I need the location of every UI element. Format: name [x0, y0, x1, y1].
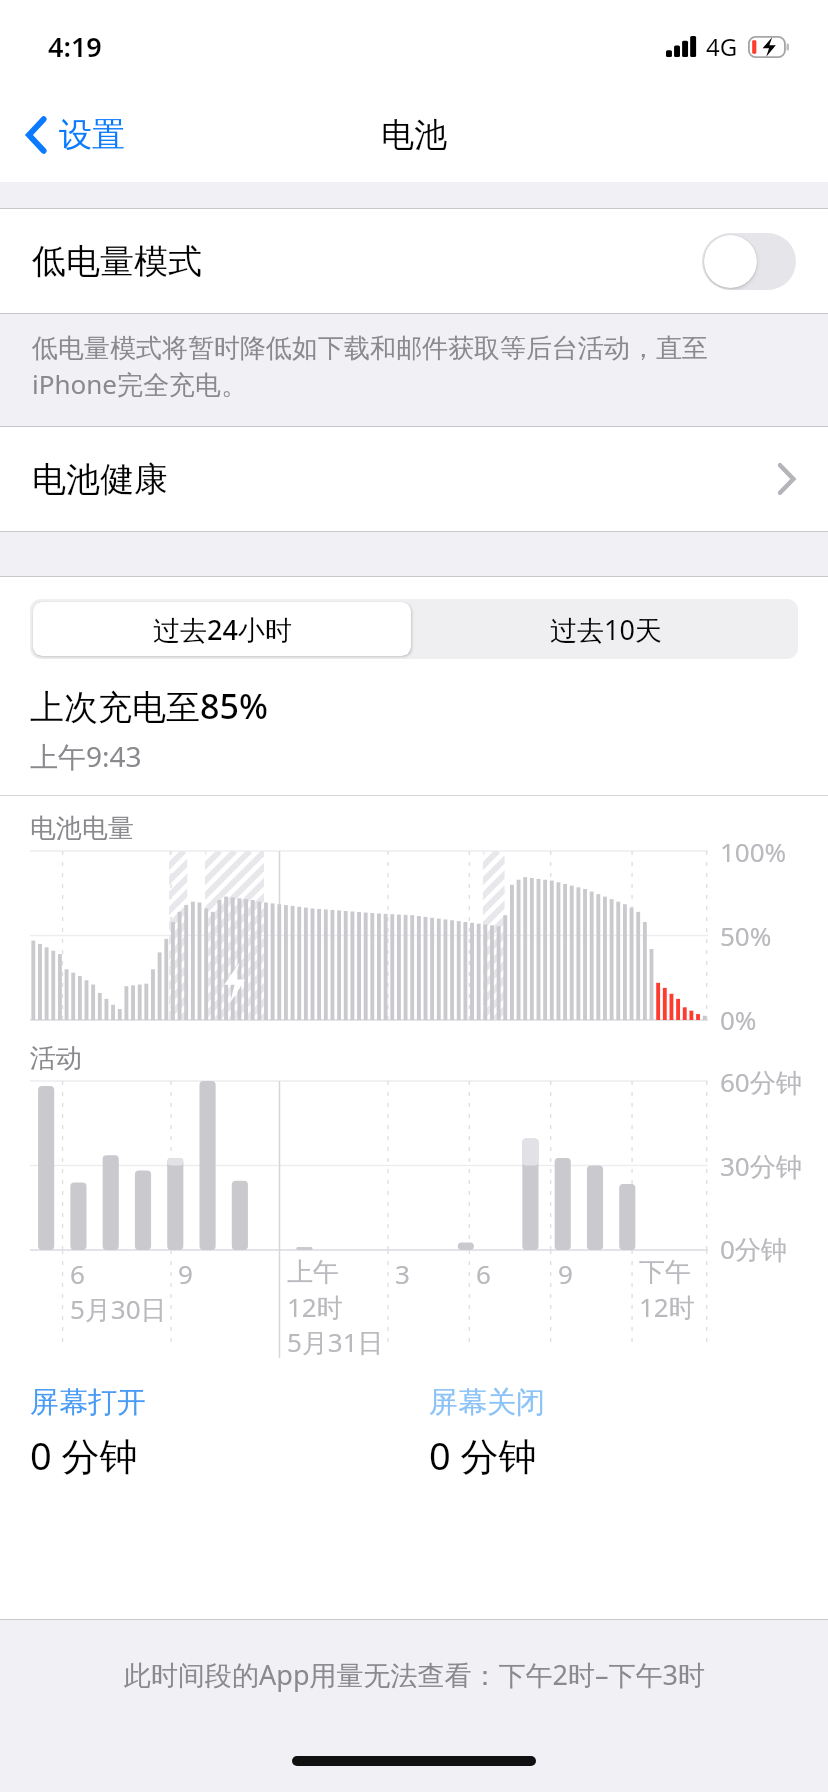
- staticText: 过去24小时: [153, 611, 292, 648]
- staticText: 过去10天: [550, 611, 662, 648]
- button[interactable]: 屏幕打开: [30, 1384, 429, 1481]
- button[interactable]: 屏幕关闭: [429, 1384, 828, 1481]
- button[interactable]: 电池健康: [0, 427, 828, 531]
- staticText: 30分钟: [720, 1148, 802, 1184]
- staticText: 0分钟: [720, 1231, 787, 1267]
- staticText: 60分钟: [720, 1064, 802, 1100]
- staticText: 屏幕打开: [30, 1384, 146, 1421]
- staticText: 100%: [720, 834, 787, 869]
- staticText: 电池: [381, 114, 447, 156]
- staticText: 6: [70, 1256, 85, 1291]
- staticText: 此时间段的App用量无法查看：下午2时–下午3时: [124, 1656, 705, 1693]
- staticText: 5月31日: [287, 1324, 384, 1360]
- button[interactable]: 低电量模式 开关: [702, 233, 796, 290]
- staticText: 4:19: [48, 28, 102, 65]
- staticText: 电池电量: [30, 812, 134, 845]
- button[interactable]: 过去10天: [414, 599, 798, 659]
- staticText: 3: [395, 1256, 410, 1291]
- staticText: 设置: [59, 114, 125, 156]
- staticText: 6: [476, 1256, 491, 1291]
- staticText: 上午9:43: [30, 737, 142, 775]
- button[interactable]: 低电量模式: [0, 209, 828, 313]
- staticText: 50%: [720, 918, 772, 953]
- staticText: 低电量模式: [32, 240, 702, 283]
- staticText: 4G: [706, 30, 738, 63]
- staticText: 5月30日: [70, 1291, 167, 1327]
- staticText: 活动: [30, 1042, 82, 1075]
- staticText: 电池健康: [32, 458, 777, 501]
- staticText: 9: [558, 1256, 573, 1291]
- staticText: 0 分钟: [429, 1429, 537, 1481]
- button[interactable]: 设置: [16, 104, 135, 166]
- staticText: 上午 12时: [287, 1256, 343, 1324]
- staticText: 0%: [720, 1002, 757, 1037]
- staticText: 下午 12时: [639, 1256, 695, 1324]
- staticText: 上次充电至85%: [30, 683, 268, 729]
- staticText: 屏幕关闭: [429, 1384, 545, 1421]
- staticText: 9: [178, 1256, 193, 1291]
- staticText: 0 分钟: [30, 1429, 138, 1481]
- button[interactable]: 过去24小时: [33, 602, 411, 656]
- staticText: 低电量模式将暂时降低如下载和邮件获取等后台活动，直至iPhone完全充电。: [32, 332, 780, 402]
